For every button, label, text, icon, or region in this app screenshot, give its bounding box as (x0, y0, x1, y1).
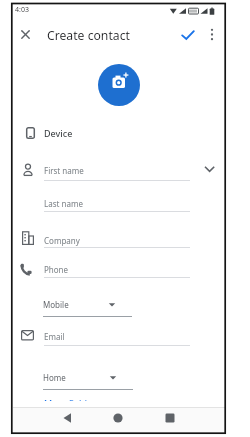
staticText: First name (44, 165, 84, 176)
button[interactable] (13, 259, 224, 282)
staticText: Company (44, 235, 80, 246)
staticText: Mobile (43, 299, 69, 310)
button[interactable] (13, 123, 224, 143)
staticText: Phone (44, 264, 69, 275)
button[interactable] (163, 411, 177, 425)
button[interactable] (13, 228, 224, 253)
staticText: Last name (44, 198, 83, 209)
button[interactable] (13, 295, 153, 319)
staticText: Home (43, 372, 66, 383)
staticText: More fields (44, 397, 92, 409)
staticText: Email (44, 331, 65, 342)
button[interactable] (13, 394, 113, 406)
staticText: Device (44, 127, 73, 139)
button[interactable] (111, 411, 125, 425)
button[interactable] (13, 368, 153, 392)
button[interactable] (205, 25, 219, 44)
button[interactable] (98, 64, 140, 106)
button[interactable] (13, 157, 224, 183)
button[interactable] (61, 411, 75, 425)
button[interactable] (179, 26, 197, 43)
button[interactable] (13, 325, 224, 349)
button[interactable] (16, 25, 35, 44)
button[interactable] (13, 192, 224, 217)
staticText: 4:03 (15, 5, 29, 15)
staticText: Create contact (47, 27, 130, 44)
